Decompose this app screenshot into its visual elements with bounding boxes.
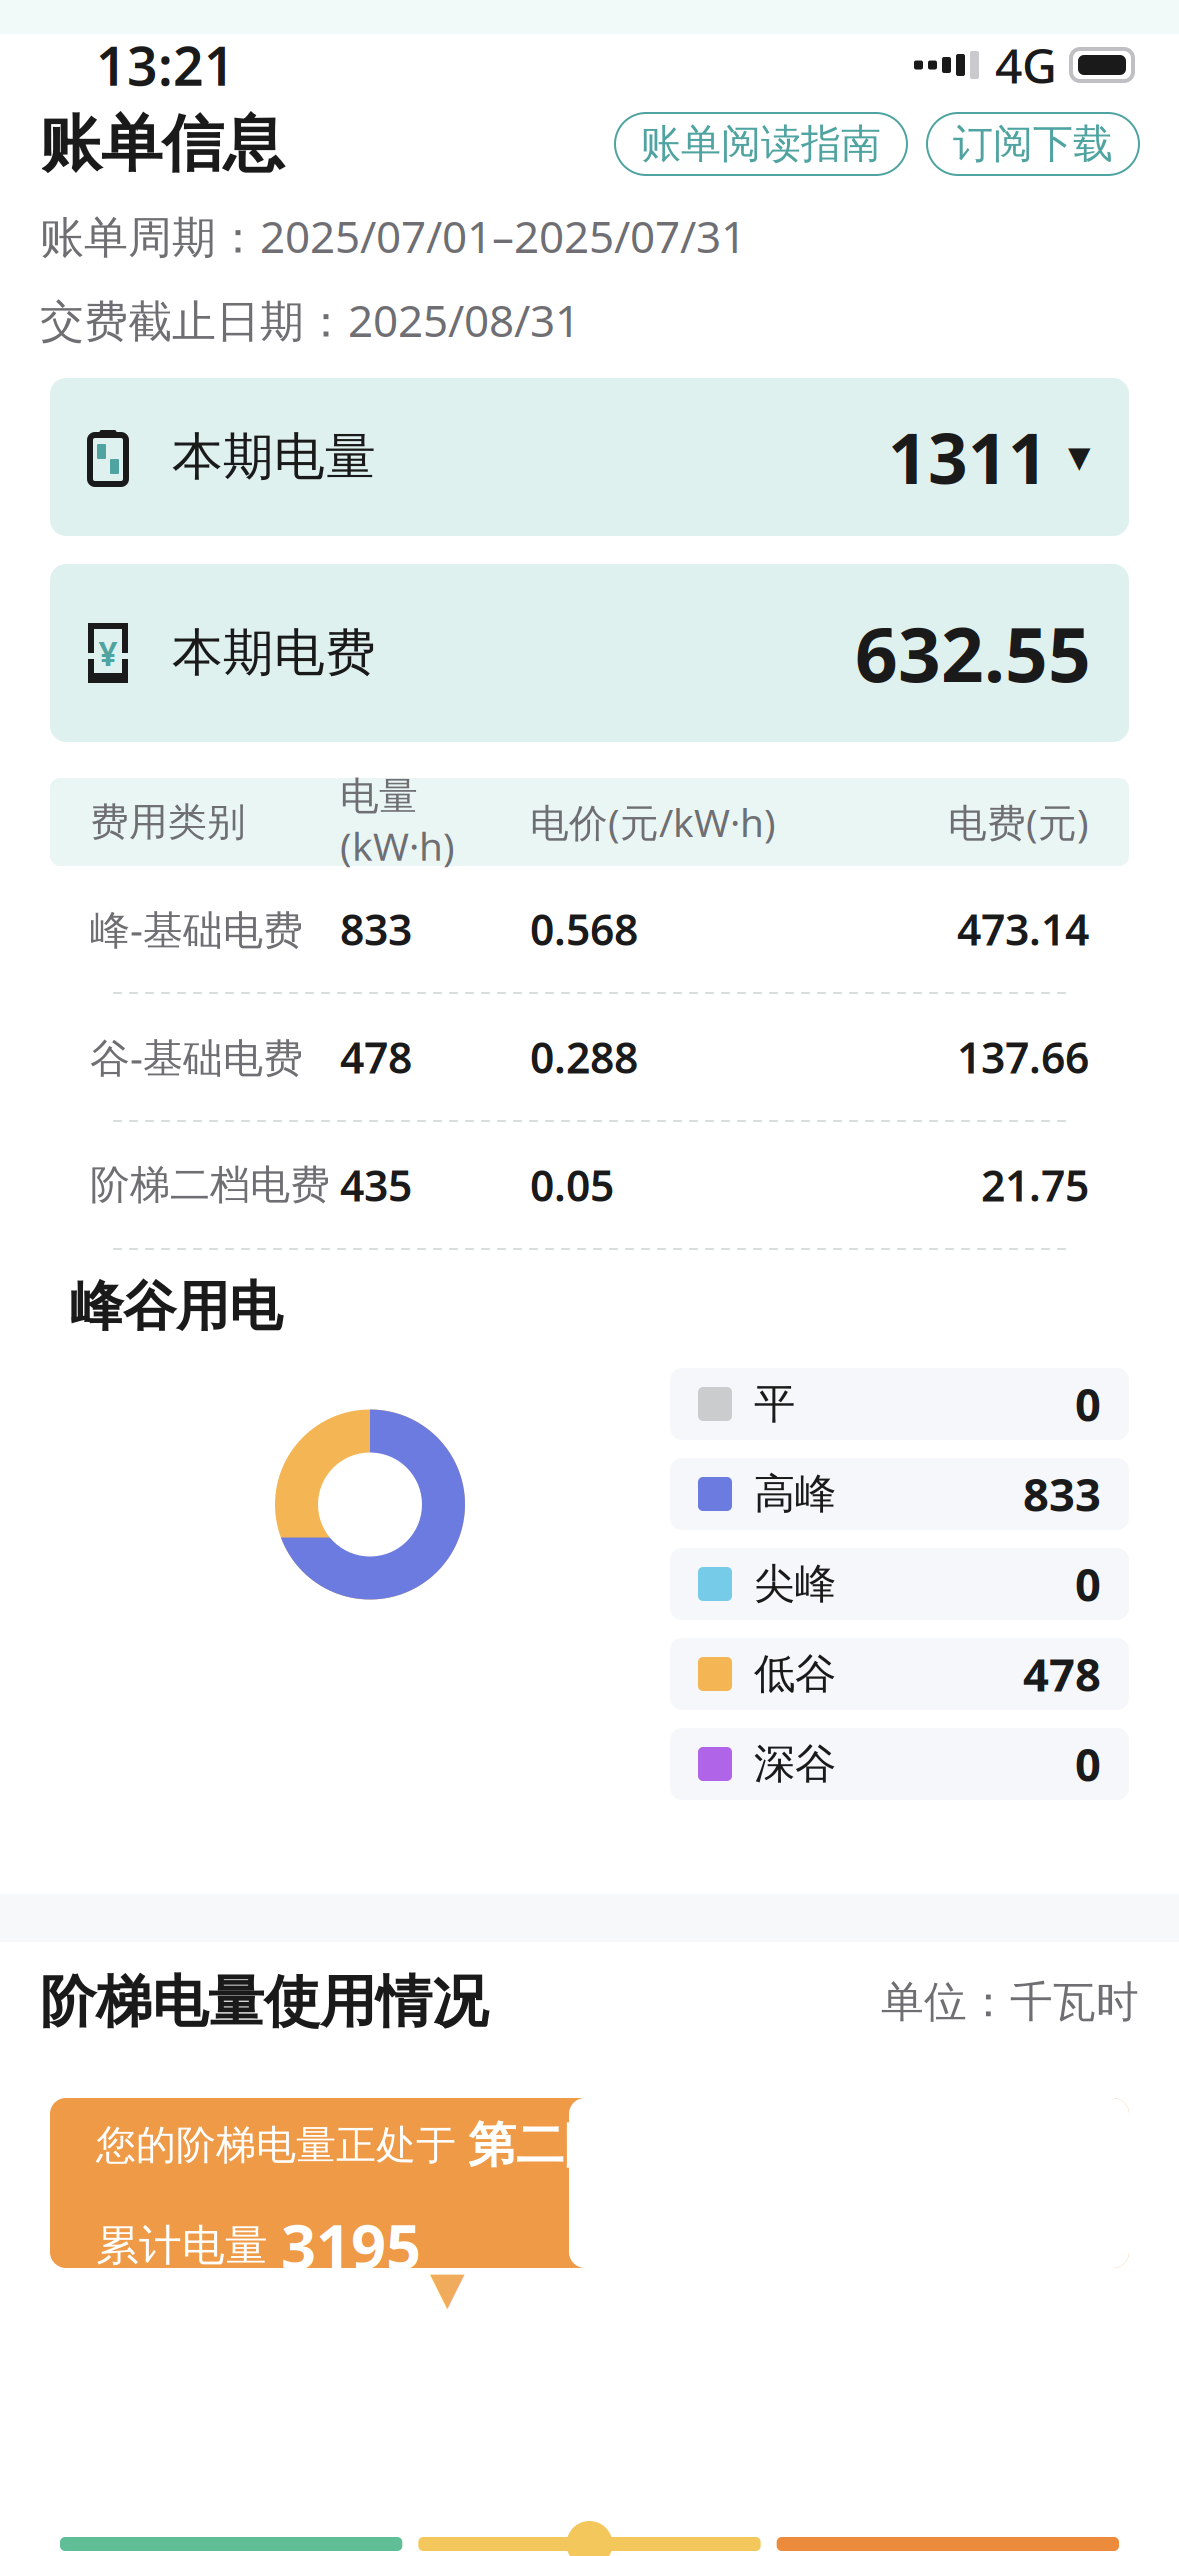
staticText: 低谷: [754, 1649, 836, 1699]
staticText: 平: [754, 1379, 795, 1429]
staticText: 0.288: [530, 1029, 638, 1085]
staticText: 您的阶梯电量正处于: [96, 2121, 468, 2170]
staticText: 订阅下载: [953, 119, 1113, 168]
staticText: 0: [1075, 1374, 1101, 1434]
staticText: 尖峰: [754, 1559, 836, 1609]
button[interactable]: ¥: [50, 564, 1129, 742]
staticText: 交费截止日期：2025/08/31: [40, 291, 580, 349]
staticText: 电价(元/kW·h): [530, 796, 776, 848]
button[interactable]: 账单阅读指南: [615, 113, 907, 175]
staticText: 谷-基础电费: [90, 1030, 303, 1083]
staticText: 3195: [281, 2205, 421, 2286]
staticText: 账单信息: [40, 106, 284, 182]
button[interactable]: 订阅下载: [927, 113, 1139, 175]
staticText: 深谷: [754, 1739, 836, 1789]
staticText: 632.55: [855, 603, 1091, 703]
staticText: 435: [340, 1157, 412, 1213]
staticText: 1311: [888, 411, 1048, 503]
staticText: 账单阅读指南: [641, 119, 881, 168]
staticText: 0: [1075, 1554, 1101, 1614]
staticText: 478: [340, 1029, 412, 1085]
staticText: 峰谷用电: [70, 1274, 282, 1339]
staticText: 电量(kW·h): [340, 773, 455, 871]
staticText: 累计电量: [96, 2219, 281, 2272]
staticText: 阶梯二档电费: [90, 1160, 330, 1209]
staticText: 833: [340, 901, 412, 957]
staticText: 第二阶梯: [468, 2116, 660, 2175]
staticText: 峰-基础电费: [90, 902, 303, 955]
staticText: ▼: [430, 2262, 465, 2314]
button[interactable]: 平: [670, 1368, 1129, 1440]
staticText: 账单周期：2025/07/01–2025/07/31: [40, 207, 746, 265]
staticText: 0.568: [530, 901, 638, 957]
staticText: 21.75: [981, 1157, 1089, 1213]
staticText: 单位：千瓦时: [881, 1976, 1139, 2028]
staticText: ▼: [1068, 440, 1091, 474]
staticText: 0.05: [530, 1157, 614, 1213]
staticText: 电费(元): [948, 796, 1089, 848]
staticText: 本期电费: [172, 622, 376, 684]
button[interactable]: 本期电量: [50, 378, 1129, 536]
staticText: ¥: [98, 631, 117, 675]
staticText: 473.14: [957, 901, 1089, 957]
staticText: 13:21: [96, 30, 235, 100]
staticText: 137.66: [957, 1029, 1089, 1085]
button[interactable]: 深谷: [670, 1728, 1129, 1800]
button[interactable]: 低谷: [670, 1638, 1129, 1710]
staticText: 高峰: [754, 1469, 836, 1519]
staticText: 4G: [995, 33, 1057, 97]
staticText: 本期电量: [172, 426, 376, 488]
staticText: 费用类别: [90, 798, 246, 846]
button[interactable]: 尖峰: [670, 1548, 1129, 1620]
staticText: 0: [1075, 1734, 1101, 1794]
button[interactable]: 高峰: [670, 1458, 1129, 1530]
staticText: 阶梯电量使用情况: [40, 1968, 488, 2036]
staticText: 478: [1023, 1644, 1101, 1704]
staticText: 833: [1023, 1464, 1101, 1524]
